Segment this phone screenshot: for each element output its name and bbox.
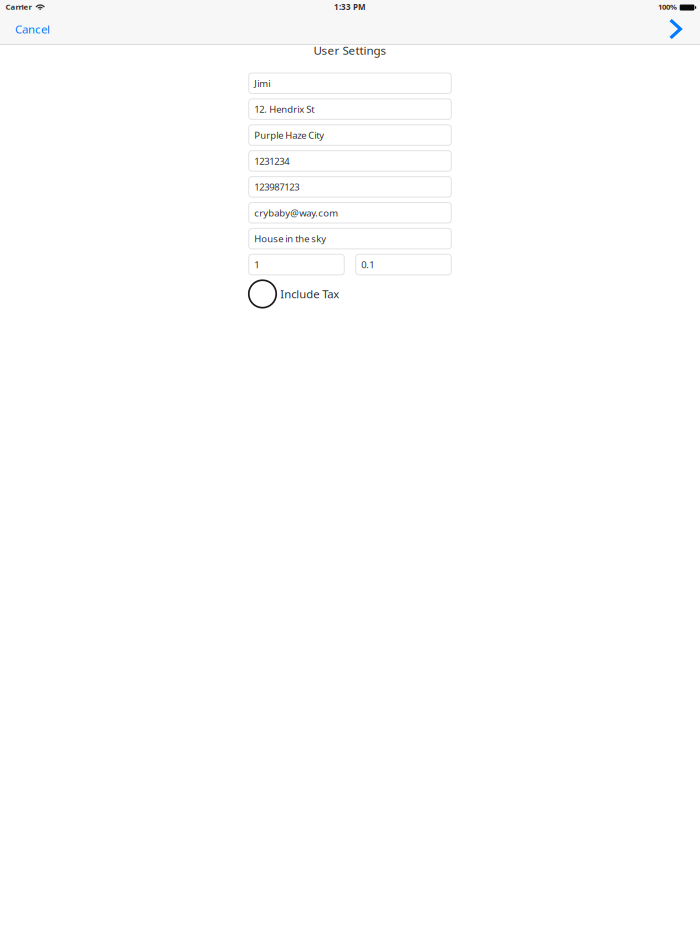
button[interactable]: Cancel: [0, 14, 60, 44]
staticText: 1231234: [254, 154, 289, 167]
staticText: 123987123: [254, 180, 299, 193]
staticText: User Settings: [313, 42, 386, 58]
staticText: Cancel: [15, 21, 50, 37]
staticText: crybaby@way.com: [254, 206, 338, 219]
staticText: House in the sky: [254, 232, 326, 245]
staticText: Carrier: [5, 1, 31, 12]
button[interactable]: 1231234: [249, 151, 451, 171]
button[interactable]: House in the sky: [249, 228, 451, 249]
staticText: 1: [254, 258, 259, 271]
staticText: 100%: [658, 1, 677, 12]
staticText: 0.1: [361, 258, 374, 271]
button[interactable]: Purple Haze City: [249, 125, 451, 145]
button[interactable]: 0.1: [356, 254, 451, 275]
button[interactable]: Include Tax: [249, 280, 451, 308]
button[interactable]: 12. Hendrix St: [249, 99, 451, 119]
button[interactable]: crybaby@way.com: [249, 202, 451, 223]
button[interactable]: 123987123: [249, 177, 451, 197]
button[interactable]: Jimi: [249, 73, 451, 93]
staticText: Include Tax: [280, 286, 339, 302]
staticText: Purple Haze City: [254, 129, 324, 141]
staticText: 12. Hendrix St: [254, 103, 314, 116]
staticText: 1:33 PM: [334, 2, 366, 12]
staticText: Jimi: [254, 77, 270, 90]
button[interactable]: Next: [659, 14, 700, 44]
button[interactable]: 1: [249, 254, 344, 275]
